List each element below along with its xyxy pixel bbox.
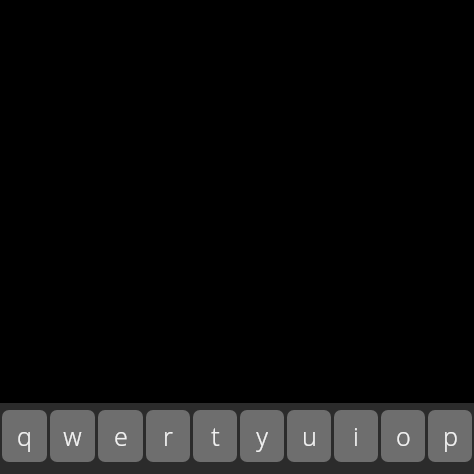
staticText: i: [353, 419, 359, 453]
staticText: w: [63, 419, 82, 453]
button[interactable]: t: [193, 410, 237, 462]
button[interactable]: w: [50, 410, 95, 462]
button[interactable]: p: [428, 410, 472, 462]
button[interactable]: o: [381, 410, 425, 462]
staticText: o: [396, 419, 411, 453]
button[interactable]: e: [98, 410, 143, 462]
button[interactable]: r: [146, 410, 190, 462]
button[interactable]: u: [287, 410, 331, 462]
staticText: t: [211, 419, 220, 453]
staticText: y: [256, 419, 268, 453]
staticText: p: [443, 419, 458, 453]
button[interactable]: y: [240, 410, 284, 462]
staticText: q: [17, 419, 32, 453]
button[interactable]: q: [2, 410, 47, 462]
staticText: r: [163, 419, 173, 453]
staticText: e: [114, 419, 128, 453]
staticText: u: [302, 419, 317, 453]
button[interactable]: i: [334, 410, 378, 462]
